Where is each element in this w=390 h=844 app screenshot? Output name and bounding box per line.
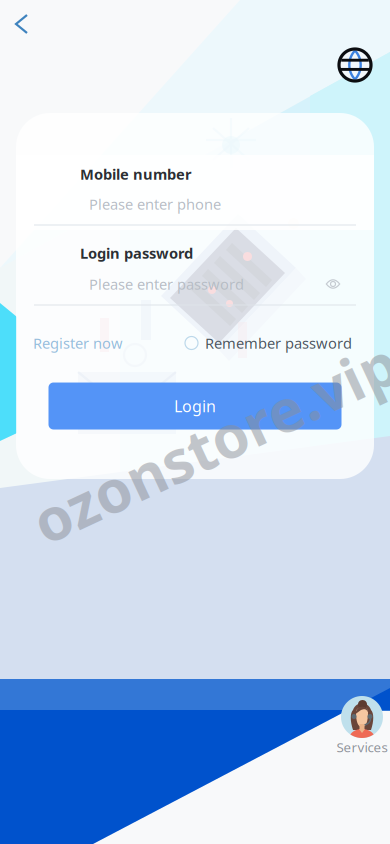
button[interactable]: Back xyxy=(0,2,44,46)
button[interactable]: Language xyxy=(333,43,377,87)
button[interactable]: Services xyxy=(333,696,390,756)
button[interactable]: Remember password xyxy=(188,331,363,355)
staticText: Please enter password xyxy=(89,274,244,294)
staticText: Mobile number xyxy=(80,164,192,184)
staticText: Login xyxy=(174,395,216,417)
staticText: Login password xyxy=(80,243,193,263)
staticText: Please enter phone xyxy=(89,194,221,214)
staticText: ozonstore.vip xyxy=(17,403,390,481)
staticText: Remember password xyxy=(205,333,352,353)
staticText: Register now xyxy=(33,333,123,353)
button[interactable]: Register now xyxy=(33,331,143,355)
button[interactable]: Show password xyxy=(316,269,350,299)
button[interactable]: Login xyxy=(48,382,341,429)
staticText: Services xyxy=(336,738,387,756)
